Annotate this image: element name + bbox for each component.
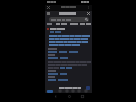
button[interactable]: Recents bbox=[79, 93, 85, 99]
button[interactable] bbox=[80, 23, 91, 25]
button[interactable]: Install bbox=[47, 90, 53, 93]
button[interactable]: Control 3 bbox=[71, 89, 75, 93]
button[interactable] bbox=[56, 23, 67, 25]
button[interactable]: Control 5 bbox=[84, 89, 88, 93]
button[interactable]: Control 4 bbox=[77, 89, 81, 93]
button[interactable]: Close tab bbox=[46, 5, 51, 10]
button[interactable] bbox=[50, 31, 61, 33]
button[interactable]: Back bbox=[52, 93, 58, 99]
button[interactable]: Control 2 bbox=[65, 89, 69, 93]
button[interactable] bbox=[60, 67, 72, 69]
button[interactable]: Menu bbox=[46, 11, 51, 16]
button[interactable]: Close bbox=[86, 11, 91, 16]
button[interactable]: More options bbox=[86, 5, 91, 10]
button[interactable]: Open app bbox=[86, 86, 90, 90]
button[interactable] bbox=[49, 17, 89, 22]
button[interactable]: Control 1 bbox=[58, 89, 62, 93]
button[interactable]: Home bbox=[66, 93, 72, 99]
